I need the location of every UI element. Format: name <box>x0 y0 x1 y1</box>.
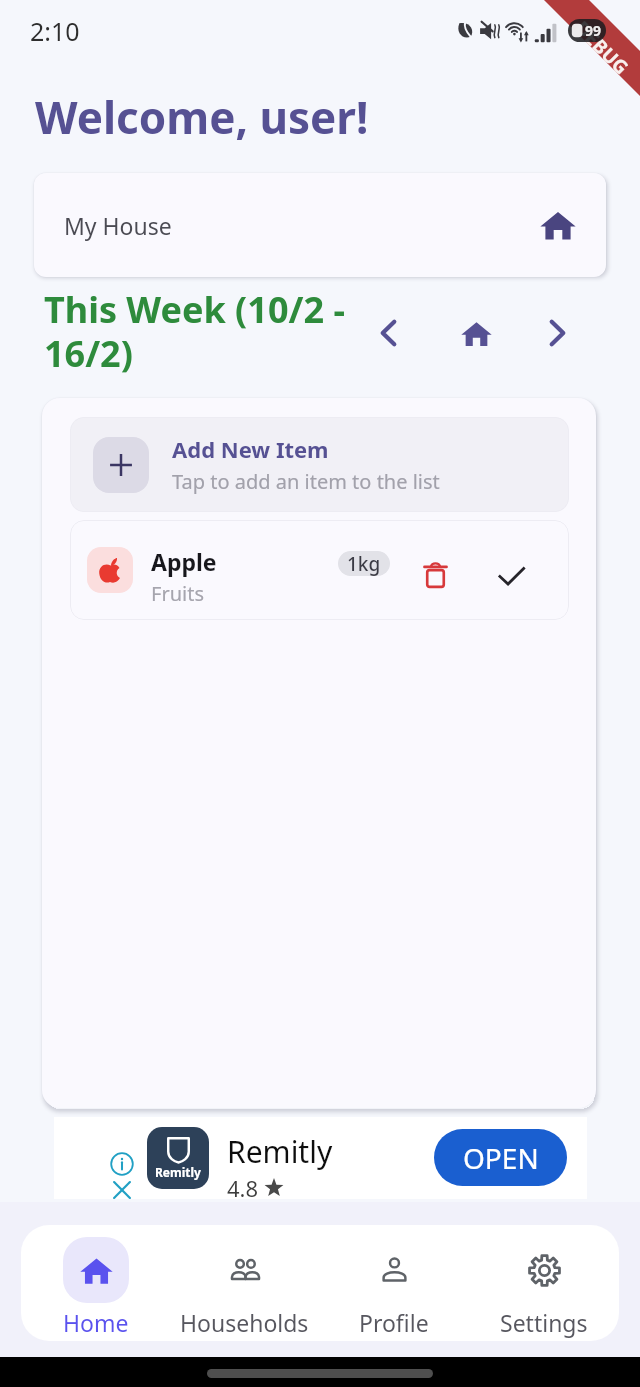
staticText: OPEN <box>463 1139 539 1177</box>
staticText: Apple <box>151 546 217 577</box>
button[interactable]: Ad info <box>110 1152 134 1176</box>
staticText: Profile <box>359 1307 429 1338</box>
button[interactable]: Close ad <box>111 1179 133 1201</box>
button[interactable]: Current week <box>454 311 498 355</box>
staticText: Remitly <box>227 1131 333 1172</box>
staticText: Home <box>63 1307 129 1338</box>
button[interactable]: Profile <box>319 1225 469 1341</box>
staticText: 99 <box>585 21 602 40</box>
staticText: Welcome, user! <box>35 87 369 147</box>
button[interactable]: Settings <box>469 1225 619 1341</box>
staticText: Households <box>180 1307 309 1338</box>
button[interactable]: OPEN <box>434 1129 567 1186</box>
other: House <box>540 207 576 243</box>
staticText: 4.8 <box>227 1173 259 1203</box>
staticText: 1kg <box>347 551 381 576</box>
button[interactable]: Delete item <box>412 551 458 597</box>
button[interactable]: Home <box>21 1225 170 1341</box>
button[interactable]: Households <box>170 1225 319 1341</box>
button[interactable]: Previous week <box>366 311 410 355</box>
staticText: Tap to add an item to the list <box>172 468 440 495</box>
button[interactable]: My House <box>34 173 606 277</box>
button[interactable]: Next week <box>535 311 579 355</box>
staticText: Remitly <box>155 1164 201 1180</box>
staticText: Settings <box>500 1307 588 1338</box>
staticText: Fruits <box>151 580 204 607</box>
button[interactable]: Add New Item <box>70 417 569 512</box>
staticText: DEBUG <box>569 15 635 81</box>
button[interactable]: Mark as done <box>488 553 534 599</box>
staticText: 2:10 <box>30 14 80 48</box>
staticText: Add New Item <box>172 434 329 464</box>
button[interactable]: Apple <box>70 520 569 620</box>
staticText: This Week (10/2 - 16/2) <box>44 285 354 377</box>
staticText: My House <box>64 210 172 241</box>
